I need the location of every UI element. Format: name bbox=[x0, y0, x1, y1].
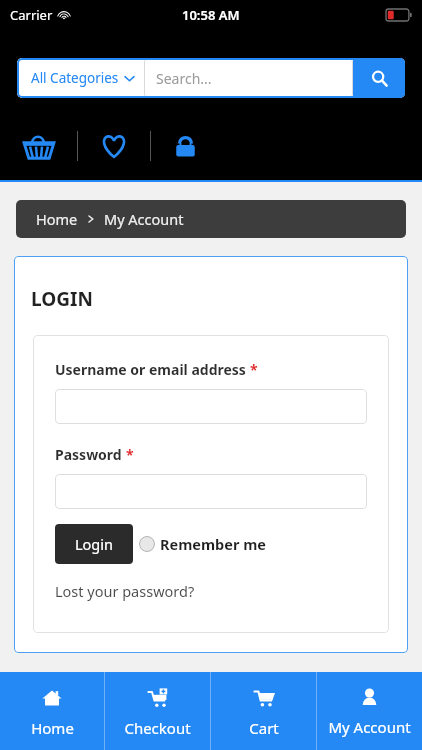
button[interactable]: Lost your password? bbox=[55, 581, 195, 601]
button[interactable]: Remember me bbox=[139, 534, 266, 554]
button[interactable]: Login bbox=[165, 126, 205, 166]
staticText: Remember me bbox=[160, 534, 266, 554]
staticText: LOGIN bbox=[31, 286, 93, 312]
staticText: Carrier bbox=[10, 6, 53, 24]
staticText: Home bbox=[36, 209, 78, 229]
button[interactable]: Cart bbox=[211, 672, 316, 750]
button[interactable] bbox=[55, 474, 367, 509]
staticText: Username or email address bbox=[55, 360, 246, 379]
button[interactable]: Checkout bbox=[105, 672, 210, 750]
button[interactable] bbox=[55, 389, 367, 424]
staticText: Password bbox=[55, 445, 122, 464]
staticText: Login bbox=[75, 534, 113, 554]
staticText: My Account bbox=[104, 209, 184, 229]
staticText: Lost your password? bbox=[55, 581, 195, 601]
button[interactable]: Wishlist bbox=[94, 126, 134, 166]
button[interactable]: Search bbox=[353, 58, 405, 98]
staticText: * bbox=[250, 360, 258, 379]
button[interactable]: Cart bbox=[17, 124, 61, 168]
button[interactable]: My Account bbox=[317, 672, 422, 750]
staticText: * bbox=[126, 445, 134, 464]
staticText: 10:58 AM bbox=[182, 6, 240, 24]
staticText: Home bbox=[31, 718, 74, 738]
button[interactable]: Home bbox=[16, 200, 406, 238]
staticText: All Categories bbox=[31, 69, 119, 87]
button[interactable]: All Categories bbox=[17, 58, 144, 98]
button[interactable]: Login bbox=[55, 524, 133, 564]
staticText: Search... bbox=[156, 69, 212, 88]
button[interactable]: Search... bbox=[144, 58, 353, 98]
staticText: Cart bbox=[249, 718, 279, 738]
staticText: Checkout bbox=[124, 718, 191, 738]
button[interactable]: Home bbox=[0, 672, 104, 750]
staticText: My Account bbox=[328, 717, 411, 737]
